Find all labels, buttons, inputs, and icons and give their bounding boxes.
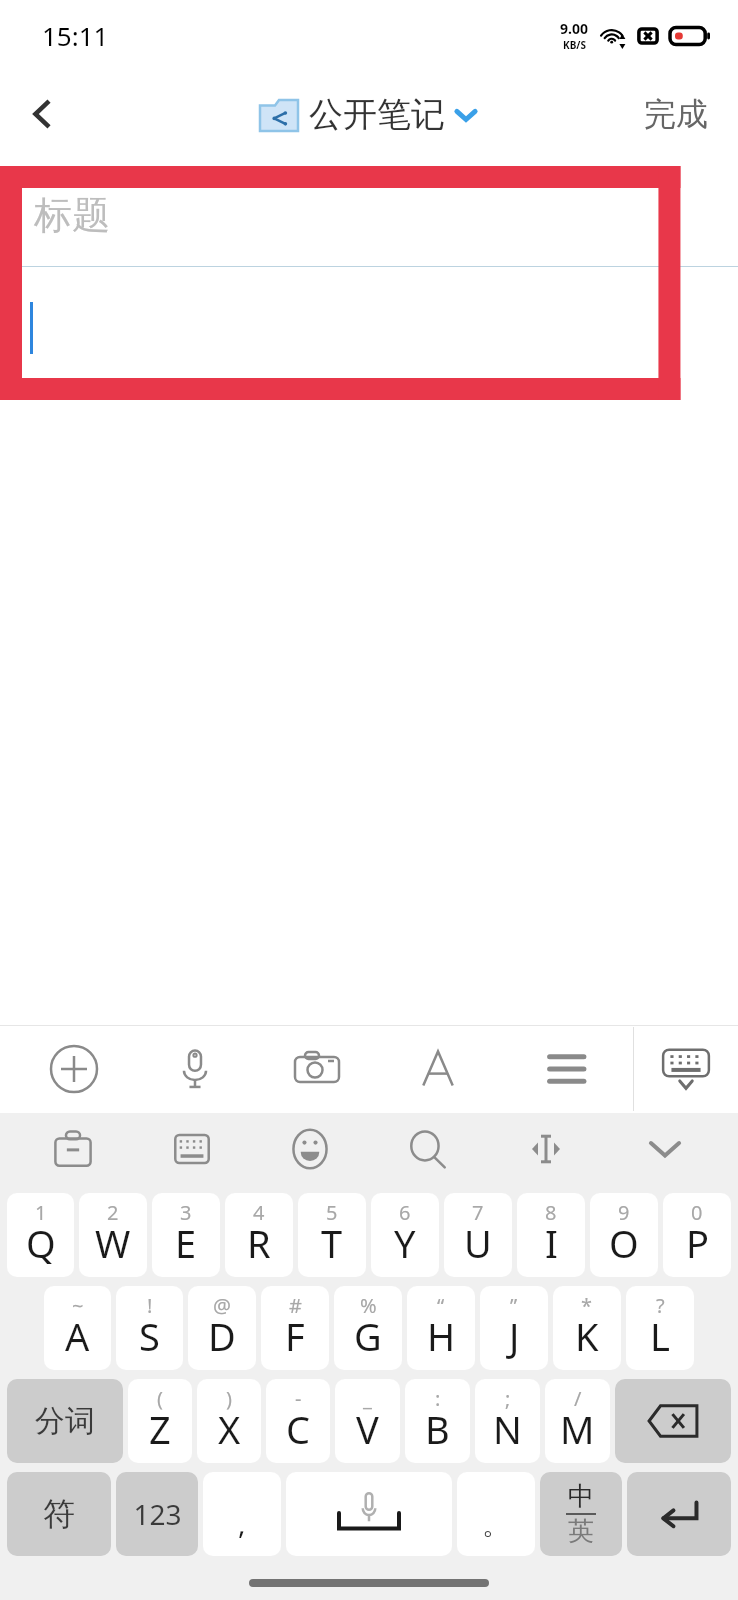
button[interactable]: 123 — [116, 1472, 198, 1556]
staticText: G — [354, 1310, 382, 1362]
button[interactable]: * — [553, 1286, 621, 1370]
staticText: 9.00 — [560, 19, 588, 38]
button[interactable]: Space — [286, 1472, 452, 1556]
staticText: H — [427, 1310, 456, 1362]
button[interactable]: Text style — [390, 1025, 486, 1113]
staticText: - — [295, 1385, 302, 1412]
staticText: 7 — [472, 1199, 484, 1226]
staticText: M — [560, 1403, 595, 1455]
staticText: , — [238, 1504, 246, 1542]
staticText: 符 — [43, 1494, 75, 1534]
staticText: 6 — [399, 1199, 411, 1226]
button[interactable]: ( — [128, 1379, 192, 1463]
button[interactable]: 符 — [7, 1472, 111, 1556]
staticText: KB/S — [563, 38, 586, 52]
button[interactable]: Backspace — [615, 1379, 731, 1463]
button[interactable]: Hide keyboard — [634, 1025, 738, 1113]
button[interactable]: 公开笔记 — [259, 93, 479, 136]
button[interactable]: _ — [335, 1379, 400, 1463]
button[interactable]: 8 — [517, 1193, 585, 1277]
staticText: 标题 — [34, 191, 110, 239]
button[interactable]: Toolbox — [28, 1113, 118, 1185]
staticText: O — [609, 1217, 639, 1269]
button[interactable]: 1 — [7, 1193, 74, 1277]
staticText: 完成 — [644, 94, 708, 134]
button[interactable]: ; — [475, 1379, 540, 1463]
staticText: @ — [213, 1292, 231, 1319]
staticText: 8 — [545, 1199, 557, 1226]
button[interactable]: 。 — [457, 1472, 535, 1556]
staticText: R — [247, 1217, 271, 1269]
staticText: * — [581, 1292, 593, 1319]
button[interactable]: ~ — [44, 1286, 111, 1370]
staticText: N — [493, 1403, 522, 1455]
staticText: 。 — [482, 1507, 510, 1542]
staticText: B — [425, 1403, 450, 1455]
button[interactable]: ! — [116, 1286, 183, 1370]
staticText: / — [574, 1385, 582, 1412]
staticText: 1 — [35, 1199, 47, 1226]
staticText: A — [65, 1310, 90, 1362]
button[interactable]: 4 — [225, 1193, 293, 1277]
staticText: V — [356, 1403, 379, 1455]
staticText: C — [286, 1403, 311, 1455]
staticText: ) — [226, 1385, 232, 1412]
staticText: # — [289, 1292, 302, 1319]
button[interactable]: ) — [197, 1379, 261, 1463]
staticText: 英 — [568, 1515, 594, 1548]
button[interactable]: “ — [407, 1286, 475, 1370]
button[interactable]: Voice — [147, 1025, 243, 1113]
button[interactable]: Add — [26, 1025, 122, 1113]
staticText: 9 — [618, 1199, 630, 1226]
staticText: 123 — [133, 1495, 182, 1533]
staticText: “ — [437, 1292, 445, 1319]
button[interactable]: ” — [480, 1286, 548, 1370]
staticText: Y — [394, 1217, 416, 1269]
staticText: 中 — [568, 1480, 594, 1513]
button[interactable]: Camera — [269, 1025, 365, 1113]
button[interactable]: Collapse — [620, 1113, 710, 1185]
staticText: S — [139, 1310, 160, 1362]
staticText: 0 — [691, 1199, 703, 1226]
button[interactable]: Move cursor — [501, 1113, 591, 1185]
staticText: 公开笔记 — [309, 93, 445, 136]
button[interactable]: List — [512, 1025, 608, 1113]
button[interactable]: / — [545, 1379, 610, 1463]
staticText: J — [509, 1310, 520, 1362]
button[interactable]: Enter — [627, 1472, 731, 1556]
button[interactable]: 0 — [663, 1193, 731, 1277]
button[interactable]: ? — [626, 1286, 694, 1370]
button[interactable]: , — [203, 1472, 281, 1556]
staticText: P — [686, 1217, 709, 1269]
button[interactable]: 完成 — [636, 86, 716, 142]
button[interactable]: 3 — [152, 1193, 220, 1277]
button[interactable]: 2 — [79, 1193, 147, 1277]
button[interactable]: # — [261, 1286, 329, 1370]
staticText: 3 — [180, 1199, 192, 1226]
button[interactable]: 5 — [298, 1193, 366, 1277]
button[interactable]: Back — [0, 72, 84, 156]
button[interactable]: : — [405, 1379, 470, 1463]
staticText: W — [95, 1217, 131, 1269]
button[interactable]: 中 — [540, 1472, 622, 1556]
staticText: U — [464, 1217, 492, 1269]
staticText: _ — [363, 1385, 372, 1412]
button[interactable]: 9 — [590, 1193, 658, 1277]
button[interactable]: Emoji — [265, 1113, 355, 1185]
button[interactable]: 分词 — [7, 1379, 123, 1463]
staticText: 15:11 — [42, 18, 109, 53]
button[interactable]: - — [266, 1379, 330, 1463]
button[interactable]: Search — [383, 1113, 473, 1185]
staticText: 5 — [326, 1199, 338, 1226]
button[interactable]: 6 — [371, 1193, 439, 1277]
staticText: 4 — [253, 1199, 265, 1226]
staticText: ( — [157, 1385, 163, 1412]
staticText: D — [208, 1310, 236, 1362]
staticText: % — [360, 1292, 377, 1319]
staticText: 分词 — [35, 1402, 95, 1440]
staticText: Z — [149, 1403, 171, 1455]
button[interactable]: 7 — [444, 1193, 512, 1277]
button[interactable]: Keyboard layout — [147, 1113, 237, 1185]
button[interactable]: % — [334, 1286, 402, 1370]
button[interactable]: @ — [188, 1286, 256, 1370]
